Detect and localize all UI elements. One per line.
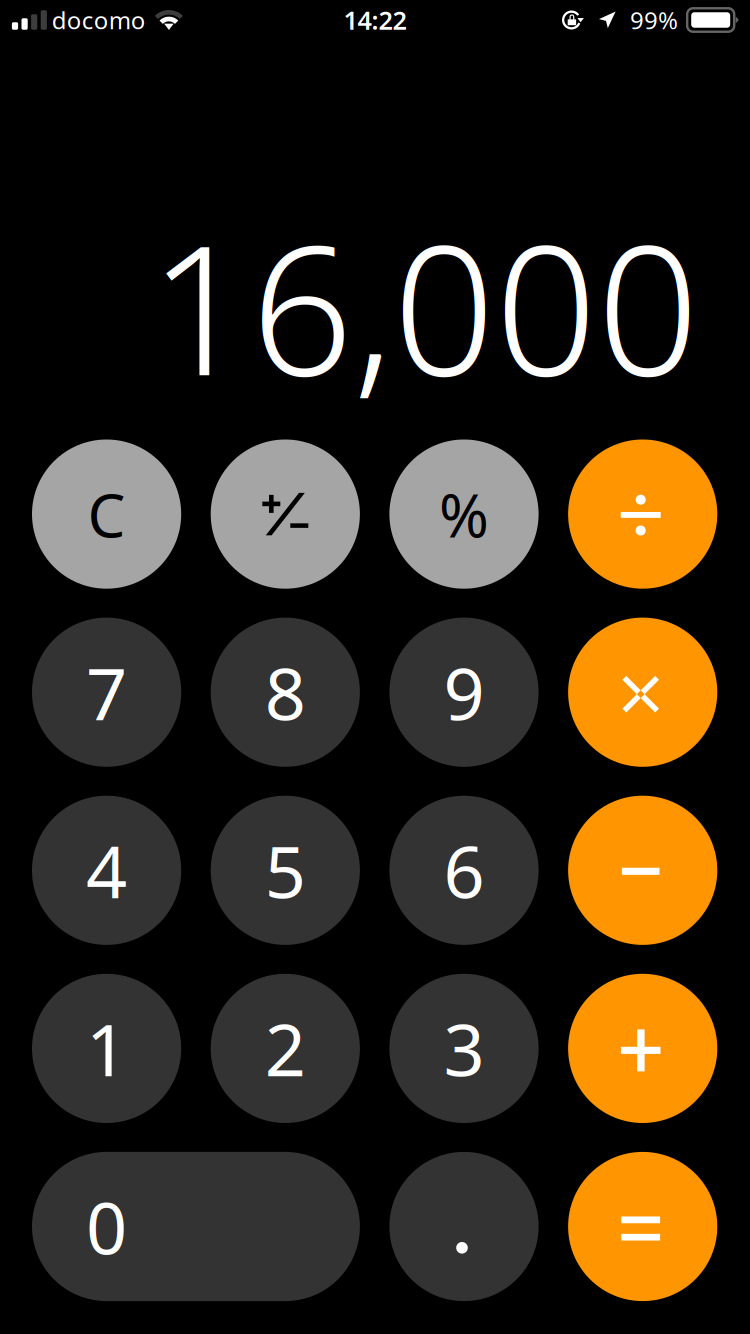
- staticText: 2: [265, 1001, 306, 1096]
- staticText: 1: [86, 1001, 127, 1096]
- staticText: 3: [443, 1001, 484, 1096]
- button[interactable]: 6: [389, 796, 539, 945]
- staticText: 8: [265, 644, 306, 740]
- button[interactable]: 0: [32, 1152, 360, 1301]
- staticText: 9: [443, 644, 484, 740]
- button[interactable]: Divide: [568, 439, 717, 589]
- staticText: 7: [86, 644, 127, 740]
- staticText: C: [88, 474, 126, 554]
- button[interactable]: Minus: [568, 796, 717, 945]
- button[interactable]: Equals: [568, 1152, 717, 1301]
- staticText: 16,000: [149, 187, 699, 425]
- staticText: 14:22: [343, 3, 406, 37]
- button[interactable]: Multiply: [568, 618, 717, 767]
- button[interactable]: 5: [211, 796, 360, 945]
- button[interactable]: %: [389, 439, 539, 589]
- button[interactable]: 9: [389, 618, 539, 767]
- button[interactable]: Plus minus: [211, 439, 360, 589]
- staticText: 4: [86, 822, 127, 918]
- button[interactable]: 1: [32, 974, 181, 1123]
- button[interactable]: 3: [389, 974, 539, 1123]
- button[interactable]: 2: [211, 974, 360, 1123]
- staticText: 5: [265, 822, 306, 918]
- button[interactable]: 7: [32, 618, 181, 767]
- staticText: 99%: [630, 4, 678, 36]
- button[interactable]: 8: [211, 618, 360, 767]
- button[interactable]: C: [32, 439, 181, 589]
- button[interactable]: Decimal point: [389, 1152, 539, 1301]
- staticText: 0: [86, 1179, 127, 1274]
- staticText: 6: [443, 822, 484, 918]
- button[interactable]: Plus: [568, 974, 717, 1123]
- button[interactable]: 4: [32, 796, 181, 945]
- staticText: docomo: [52, 4, 146, 36]
- staticText: %: [439, 474, 489, 554]
